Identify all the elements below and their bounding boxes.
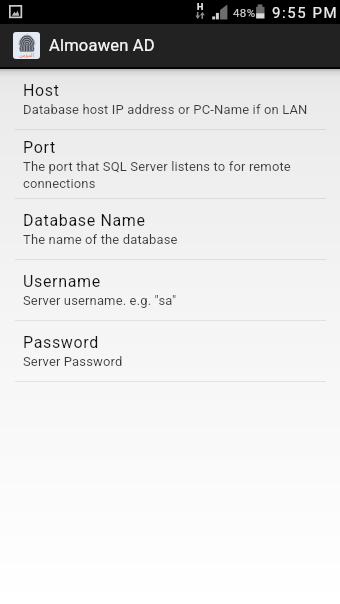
staticText: The name of the database xyxy=(23,232,178,247)
staticText: Almoawen AD xyxy=(49,36,155,55)
button[interactable]: Password xyxy=(0,321,340,381)
staticText: The port that SQL Server listens to for … xyxy=(23,159,316,190)
button[interactable]: Host xyxy=(0,69,340,129)
staticText: المؤمن xyxy=(19,52,34,58)
staticText: Server username. e.g. "sa" xyxy=(23,293,177,308)
staticText: Port xyxy=(23,138,56,157)
staticText: Database host IP address or PC-Name if o… xyxy=(23,102,308,117)
button[interactable]: Port xyxy=(0,130,340,198)
staticText: H xyxy=(197,2,204,13)
staticText: Password xyxy=(23,333,99,352)
staticText: Username xyxy=(23,272,101,291)
staticText: Host xyxy=(23,81,60,100)
button[interactable]: Username xyxy=(0,260,340,320)
staticText: Database Name xyxy=(23,211,146,230)
staticText: Server Password xyxy=(23,354,123,369)
other: Screenshot notification xyxy=(9,5,23,19)
staticText: 48% xyxy=(233,6,256,19)
staticText: 9:55 PM xyxy=(272,4,339,22)
button[interactable]: Database Name xyxy=(0,199,340,259)
